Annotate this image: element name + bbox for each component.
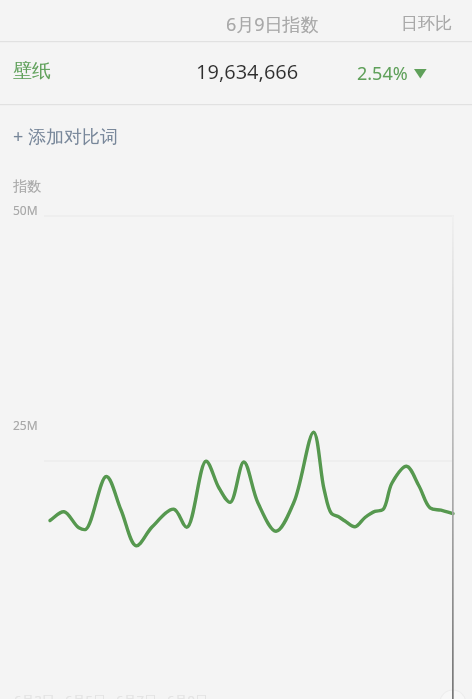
staticText: 6月9日指数 [226,12,319,37]
staticText: 壁纸 [13,59,51,83]
staticText: 日环比 [401,13,452,34]
staticText: 25M [13,417,38,433]
staticText: 19,634,666 [196,58,299,85]
button[interactable]: + 添加对比词 [0,105,472,158]
staticText: 6月3日 6月5日 6月7日 6月9日 [14,691,208,699]
staticText: 50M [13,202,38,218]
staticText: 指数 [13,178,41,196]
staticText: 2.54% [357,61,408,86]
staticText: + 添加对比词 [13,124,118,149]
other: 下降 [414,69,427,79]
button[interactable]: 壁纸 [0,42,472,105]
